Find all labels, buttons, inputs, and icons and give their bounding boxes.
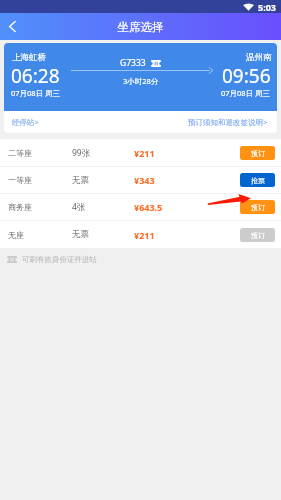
button[interactable]: 预订 — [240, 146, 275, 160]
button[interactable]: 无座 — [0, 221, 281, 248]
button[interactable]: 一等座 — [0, 167, 281, 193]
staticText: 上海虹桥 — [12, 52, 46, 63]
staticText: 二等座 — [8, 148, 72, 158]
staticText: 06:28 — [11, 63, 60, 89]
staticText: 预订 — [251, 149, 265, 158]
staticText: 无座 — [8, 230, 72, 240]
staticText: 3小时28分 — [123, 76, 159, 86]
staticText: 无票 — [72, 229, 134, 240]
staticText: 09:56 — [222, 63, 271, 89]
staticText: 预订 — [251, 231, 265, 240]
button[interactable]: 经停站> — [12, 117, 39, 127]
staticText: 温州南 — [246, 52, 272, 63]
button[interactable]: 预订 — [240, 200, 275, 214]
staticText: 07月08日 周三 — [221, 88, 271, 98]
staticText: 抢票 — [251, 176, 265, 185]
staticText: 一等座 — [8, 175, 72, 185]
button[interactable]: Back — [0, 13, 25, 40]
staticText: ¥343 — [134, 174, 240, 186]
staticText: ¥211 — [134, 147, 240, 159]
staticText: 99张 — [72, 147, 134, 159]
staticText: 4张 — [72, 201, 134, 213]
staticText: 预订 — [251, 203, 265, 212]
staticText: 可刷有效身份证件进站 — [22, 255, 97, 264]
button[interactable]: 预订须知和退改签说明> — [188, 117, 268, 127]
button[interactable]: 商务座 — [0, 194, 281, 220]
staticText: 5:03 — [258, 1, 276, 13]
button[interactable]: 抢票 — [240, 173, 275, 187]
button[interactable]: 预订 — [240, 228, 275, 242]
staticText: ¥211 — [134, 229, 240, 241]
staticText: 07月08日 周三 — [11, 88, 61, 98]
staticText: 商务座 — [8, 202, 72, 212]
button[interactable]: 二等座 — [0, 139, 281, 166]
staticText: 坐席选择 — [0, 20, 281, 34]
staticText: G7333 — [120, 57, 146, 69]
staticText: 无票 — [72, 175, 134, 186]
staticText: ¥643.5 — [134, 201, 240, 213]
